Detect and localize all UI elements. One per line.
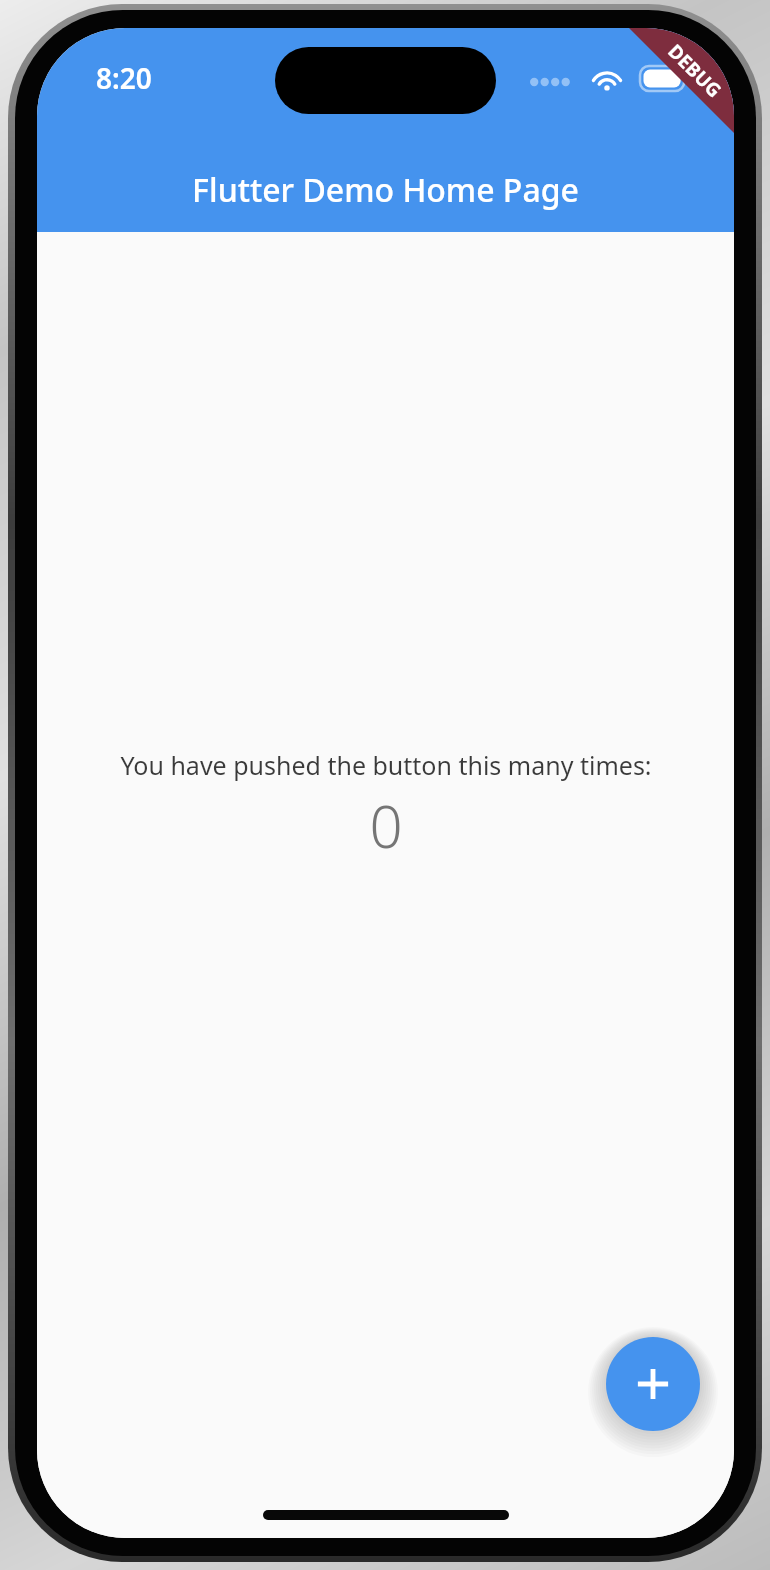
staticText: 0 [369, 786, 403, 865]
staticText: You have pushed the button this many tim… [120, 748, 652, 782]
button[interactable]: Increment counter [606, 1337, 700, 1431]
staticText: 8:20 [96, 59, 152, 97]
staticText: Flutter Demo Home Page [192, 168, 579, 212]
staticText: DEBUG [662, 38, 728, 104]
